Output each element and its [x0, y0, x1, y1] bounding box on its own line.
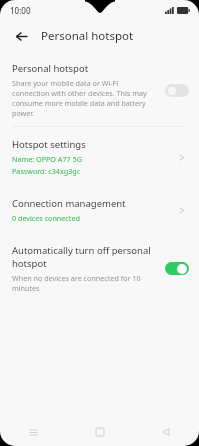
staticText: Hotspot settings [12, 138, 86, 151]
staticText: Password: c34xg3gc [12, 166, 81, 176]
button[interactable]: Hotspot settings [0, 127, 199, 185]
button[interactable]: Back [10, 25, 32, 47]
staticText: Connection management [12, 197, 126, 210]
button[interactable]: Automatically turn off personal hotspot [0, 239, 199, 301]
button[interactable]: Recent apps [0, 418, 67, 446]
staticText: Share your mobile data or Wi-Fi connecti… [12, 78, 157, 118]
other: Open [171, 147, 191, 167]
other: Open [171, 200, 191, 220]
staticText: 0 devices connected [12, 213, 80, 223]
staticText: Name: OPPO A77 5G [12, 154, 82, 164]
staticText: Personal hotspot [12, 62, 89, 75]
staticText: Automatically turn off personal hotspot [12, 244, 157, 270]
staticText: When no devices are connected for 10 min… [12, 273, 157, 293]
button[interactable]: Back [133, 418, 199, 446]
staticText: 10:00 [10, 5, 31, 16]
button[interactable]: Toggle on [165, 262, 189, 275]
button[interactable]: Toggle off [165, 84, 189, 97]
staticText: Personal hotspot [41, 28, 134, 44]
button[interactable]: Personal hotspot [0, 52, 199, 126]
button[interactable]: Connection management [0, 191, 199, 232]
button[interactable]: Home [67, 418, 133, 446]
